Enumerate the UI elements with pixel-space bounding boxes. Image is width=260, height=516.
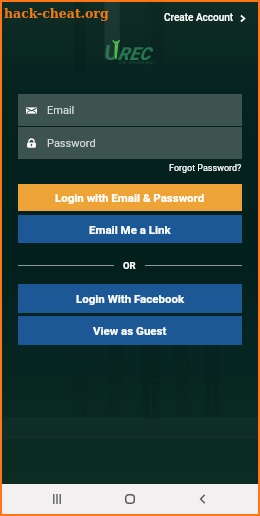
- button[interactable]: View as Guest: [18, 316, 242, 345]
- button[interactable]: Login With Facebook: [18, 284, 242, 313]
- button[interactable]: Email Me a Link: [18, 215, 242, 243]
- staticText: OR: [123, 260, 136, 271]
- staticText: UW-GREEN BAY: [119, 60, 156, 64]
- button[interactable]: Back: [189, 485, 217, 513]
- button[interactable]: Recent apps: [43, 485, 71, 513]
- staticText: Login with Email & Password: [55, 191, 205, 204]
- button[interactable]: Login with Email & Password: [18, 184, 242, 211]
- staticText: hack-cheat.org: [4, 6, 109, 21]
- staticText: Email Me a Link: [89, 223, 171, 236]
- staticText: View as Guest: [93, 324, 167, 337]
- button[interactable]: Email: [18, 94, 242, 126]
- staticText: REC: [118, 43, 151, 64]
- staticText: Password: [47, 137, 96, 150]
- staticText: Login With Facebook: [76, 292, 185, 305]
- button[interactable]: Home: [116, 485, 144, 513]
- staticText: Email: [47, 104, 75, 117]
- button[interactable]: Create Account: [153, 8, 258, 28]
- button[interactable]: Password: [18, 127, 242, 159]
- button[interactable]: Forgot Password?: [169, 163, 242, 174]
- staticText: Create Account: [164, 12, 234, 24]
